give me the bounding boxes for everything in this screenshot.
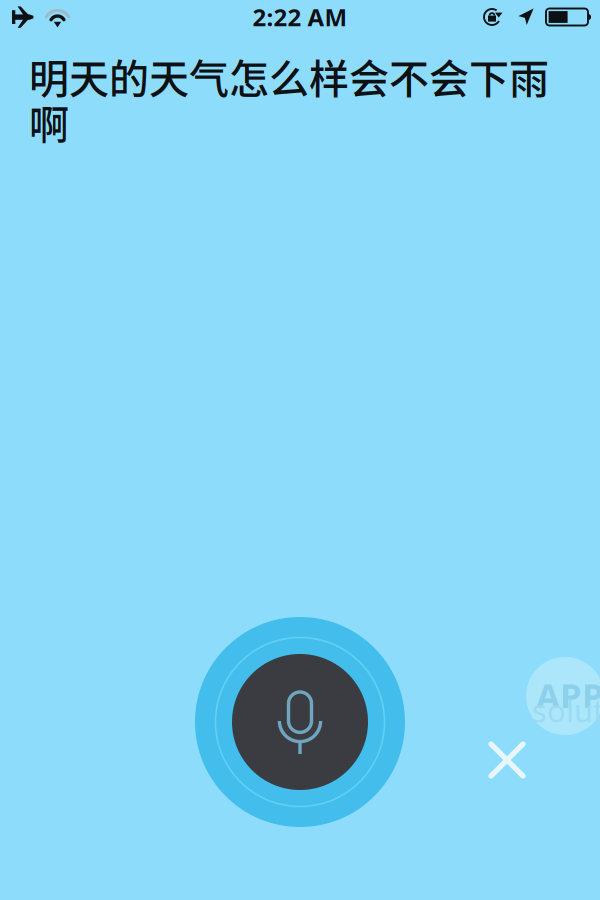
button[interactable]: Record voice [195,617,405,827]
button[interactable]: Close [482,735,532,785]
staticText: APP [536,672,600,718]
staticText: 2:22 AM [252,1,347,33]
staticText: solution [532,690,600,731]
staticText: 明天的天气怎么样会不会下雨啊 [29,47,549,151]
